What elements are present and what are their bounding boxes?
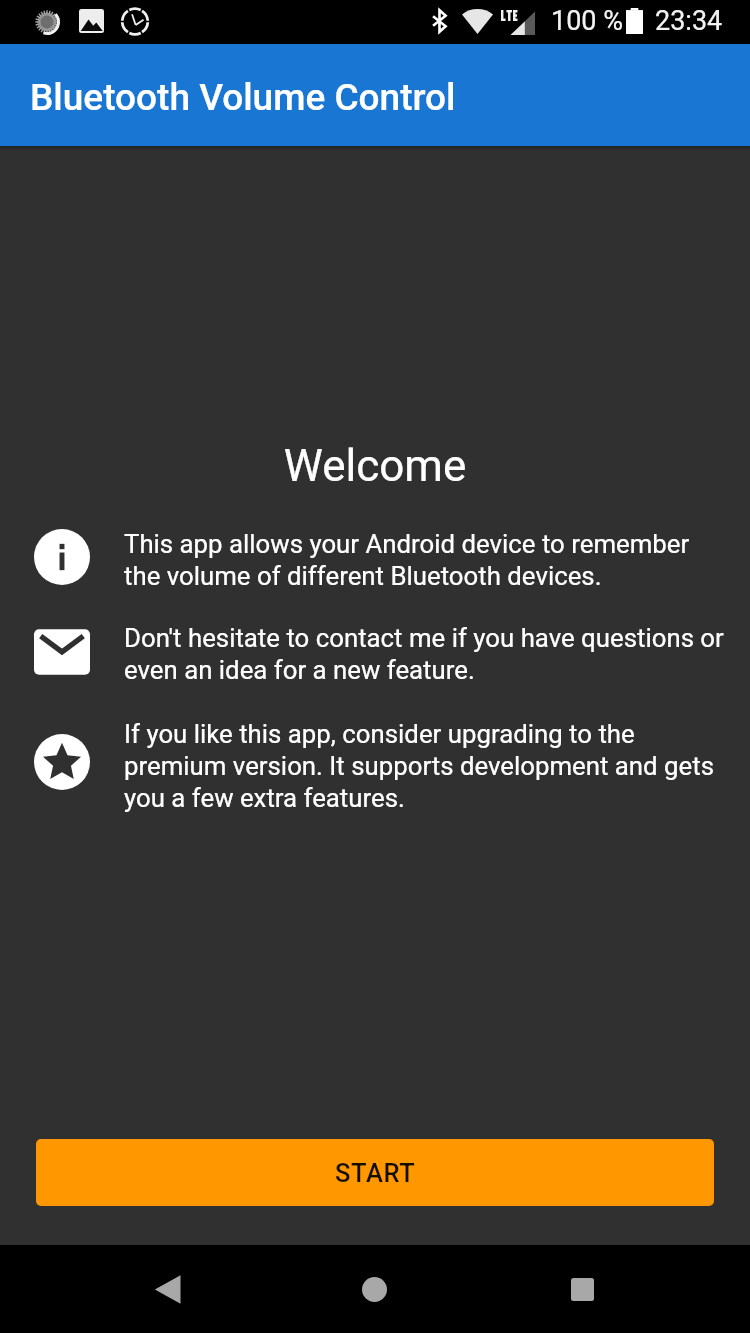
button[interactable]: Home xyxy=(330,1245,419,1333)
staticText: Don't hesitate to contact me if you have… xyxy=(124,623,750,686)
staticText: This app allows your Android device to r… xyxy=(124,529,750,592)
staticText: If you like this app, consider upgrading… xyxy=(124,719,750,814)
staticText: Bluetooth Volume Control xyxy=(30,76,456,119)
button[interactable]: Back xyxy=(123,1245,212,1333)
staticText: 100 % xyxy=(551,5,623,37)
staticText: Welcome xyxy=(0,440,750,492)
button[interactable]: START xyxy=(36,1139,714,1206)
button[interactable]: Recent apps xyxy=(538,1245,627,1333)
staticText: START xyxy=(335,1158,416,1188)
staticText: 23:34 xyxy=(655,5,723,37)
